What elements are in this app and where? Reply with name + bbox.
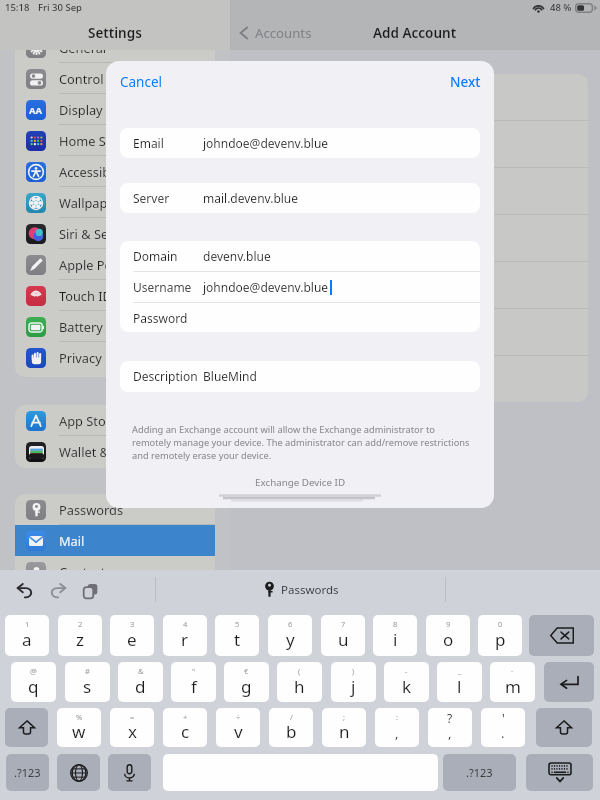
- button[interactable]: Undo: [16, 580, 35, 602]
- staticText: Description: [133, 368, 198, 384]
- staticText: Accounts: [255, 24, 312, 42]
- staticText: x: [128, 720, 137, 743]
- button[interactable]: Passwords: [264, 580, 339, 599]
- button[interactable]: Siri & Search: [15, 218, 215, 249]
- button[interactable]: 7: [321, 615, 365, 656]
- button[interactable]: #: [65, 662, 110, 702]
- button[interactable]: Control Centre: [15, 63, 215, 94]
- button[interactable]: :: [375, 708, 419, 747]
- button[interactable]: Accounts: [239, 18, 312, 48]
- button[interactable]: Dictation: [108, 754, 151, 791]
- staticText: €: [244, 666, 249, 676]
- button[interactable]: Wallet & Apple Pay: [15, 436, 215, 467]
- staticText: Adding an Exchange account will allow th…: [132, 423, 476, 462]
- button[interactable]: ÷: [216, 708, 260, 747]
- staticText: :: [396, 712, 399, 722]
- staticText: App Store: [59, 412, 118, 429]
- staticText: u: [338, 628, 349, 651]
- button[interactable]: Home Screen & Dock: [15, 125, 215, 156]
- button[interactable]: Hide keyboard: [526, 754, 593, 791]
- button[interactable]: &: [118, 662, 163, 702]
- button[interactable]: Accessibility: [15, 156, 215, 187]
- button[interactable]: Password: [120, 303, 480, 332]
- staticText: _: [458, 666, 462, 676]
- button[interactable]: Numbers: [443, 754, 516, 791]
- staticText: 1: [25, 619, 30, 629]
- staticText: r: [181, 628, 189, 651]
- button[interactable]: 3: [110, 615, 154, 656]
- staticText: e: [127, 628, 137, 651]
- button[interactable]: Privacy: [15, 342, 215, 373]
- staticText: Display & Brightness: [59, 101, 184, 118]
- staticText: Privacy: [59, 349, 102, 366]
- button[interactable]: _: [437, 662, 482, 702]
- staticText: .?123: [466, 765, 493, 780]
- button[interactable]: Next: [450, 73, 481, 91]
- button[interactable]: Cancel: [120, 73, 163, 91]
- button[interactable]: Apple Pencil: [15, 249, 215, 280]
- button[interactable]: +: [163, 708, 207, 747]
- button[interactable]: /: [269, 708, 313, 747]
- button[interactable]: %: [57, 708, 101, 747]
- button[interactable]: General: [15, 32, 215, 63]
- button[interactable]: ·: [490, 662, 535, 702]
- button[interactable]: Username: [120, 272, 480, 302]
- staticText: j: [351, 675, 356, 698]
- button[interactable]: Contacts: [15, 556, 215, 587]
- staticText: 0: [498, 619, 503, 629]
- button[interactable]: 8: [373, 615, 417, 656]
- button[interactable]: ?: [428, 708, 472, 747]
- staticText: Control Centre: [59, 70, 147, 87]
- button[interactable]: 1: [5, 615, 49, 656]
- button[interactable]: ': [481, 708, 525, 747]
- button[interactable]: ": [171, 662, 216, 702]
- button[interactable]: 5: [215, 615, 259, 656]
- button[interactable]: @: [11, 662, 56, 702]
- button[interactable]: Return: [544, 662, 594, 702]
- staticText: General: [59, 39, 107, 56]
- staticText: Exchange Device ID: [255, 476, 346, 489]
- button[interactable]: Mail: [15, 525, 215, 556]
- button[interactable]: Paste: [81, 580, 100, 602]
- staticText: ,: [395, 724, 399, 742]
- button[interactable]: 0: [478, 615, 522, 656]
- button[interactable]: App Store: [15, 405, 215, 436]
- button[interactable]: ;: [322, 708, 366, 747]
- button[interactable]: Switch keyboard: [57, 754, 100, 791]
- button[interactable]: Backspace: [529, 615, 594, 656]
- button[interactable]: Numbers: [6, 754, 49, 791]
- button[interactable]: 6: [268, 615, 312, 656]
- staticText: Battery: [59, 318, 103, 335]
- button[interactable]: Touch ID & Passcode: [15, 280, 215, 311]
- staticText: Settings: [88, 24, 142, 42]
- staticText: 6: [288, 619, 293, 629]
- button[interactable]: (: [277, 662, 322, 702]
- button[interactable]: -: [384, 662, 429, 702]
- button[interactable]: Server: [120, 183, 480, 213]
- button[interactable]: Description: [120, 361, 480, 391]
- button[interactable]: Shift: [5, 708, 48, 747]
- button[interactable]: Redo: [48, 580, 67, 602]
- button[interactable]: Shift: [536, 708, 592, 747]
- staticText: (: [298, 666, 301, 676]
- staticText: a: [22, 628, 32, 651]
- button[interactable]: 9: [426, 615, 470, 656]
- button[interactable]: Battery: [15, 311, 215, 342]
- button[interactable]: 4: [163, 615, 207, 656]
- button[interactable]: €: [224, 662, 269, 702]
- button[interactable]: Email: [120, 128, 480, 158]
- staticText: n: [339, 720, 350, 743]
- staticText: ÷: [236, 712, 241, 722]
- button[interactable]: Domain: [120, 241, 480, 271]
- button[interactable]: =: [110, 708, 154, 747]
- button[interactable]: Wallpaper: [15, 187, 215, 218]
- button[interactable]: AA: [15, 94, 215, 125]
- staticText: g: [241, 675, 252, 698]
- button[interactable]: ): [331, 662, 376, 702]
- staticText: devenv.blue: [203, 248, 271, 264]
- button[interactable]: 2: [58, 615, 102, 656]
- staticText: b: [286, 720, 297, 743]
- button[interactable]: Passwords: [15, 494, 215, 525]
- staticText: z: [76, 628, 84, 651]
